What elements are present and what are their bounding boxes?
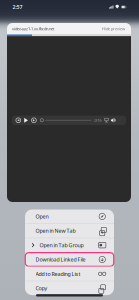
staticText: 2:57: [12, 3, 22, 11]
staticText: Download Linked File: [36, 256, 86, 263]
button[interactable]: Open in Tab Group: [25, 238, 114, 252]
staticText: Add to Reading List: [36, 270, 81, 277]
button[interactable]: Download Linked File: [25, 253, 114, 266]
button[interactable]: Hide preview: [102, 26, 125, 31]
button[interactable]: Play: [24, 118, 28, 123]
button[interactable]: AirPlay: [104, 118, 108, 122]
staticText: -0:16: [93, 118, 101, 123]
staticText: video-yyz1-1.xx.fbcdn.net: [12, 26, 54, 31]
staticText: Open in Tab Group: [39, 242, 83, 249]
button[interactable]: Add to Reading List: [25, 267, 114, 281]
staticText: Open: [36, 213, 49, 220]
button[interactable]: Open in New Tab: [25, 224, 114, 238]
button[interactable]: Open: [25, 209, 114, 223]
button[interactable]: Mute: [111, 118, 115, 122]
button[interactable]: Skip forward 15 seconds: [31, 118, 37, 123]
staticText: Hide preview: [102, 26, 125, 31]
staticText: Open in New Tab: [36, 227, 76, 234]
button[interactable]: Copy: [25, 281, 114, 295]
button[interactable]: Skip back 15 seconds: [16, 118, 21, 123]
staticText: Copy: [36, 285, 48, 292]
